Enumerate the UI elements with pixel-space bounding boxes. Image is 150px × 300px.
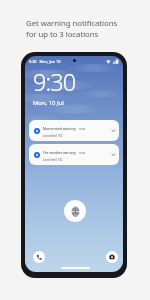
- staticText: Lancefield, VIC: [43, 158, 63, 162]
- staticText: for up to 3 locations: [26, 29, 99, 40]
- staticText: Mon, 10 Jul: [33, 99, 64, 107]
- button[interactable]: Marine wind warning: [29, 120, 119, 141]
- staticText: Marine wind warning: [43, 127, 76, 131]
- staticText: Get warning notifications: [26, 18, 118, 29]
- staticText: Lancefield, VIC: [43, 134, 63, 138]
- button[interactable]: Camera: [106, 251, 118, 263]
- staticText: 9:30: [33, 66, 76, 98]
- staticText: Fire weather warning: [43, 151, 76, 155]
- button[interactable]: Fingerprint unlock: [64, 200, 86, 222]
- staticText: · now: [76, 127, 86, 131]
- staticText: 9:30 Mon, Jan 10: [29, 59, 61, 64]
- staticText: · now: [76, 151, 86, 155]
- button[interactable]: Fire weather warning: [29, 144, 119, 165]
- button[interactable]: Phone: [33, 251, 45, 263]
